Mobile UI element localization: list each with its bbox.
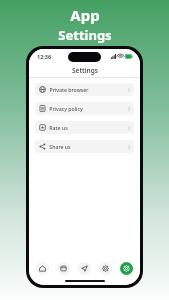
staticText: 12:36 <box>37 53 52 60</box>
button[interactable]: Privacy policy <box>35 102 134 115</box>
button[interactable]: Tools <box>99 262 112 275</box>
button[interactable]: Rate us <box>35 121 134 134</box>
staticText: Settings <box>72 66 98 75</box>
button[interactable]: Send <box>78 262 91 275</box>
staticText: Private browser <box>49 86 89 93</box>
button[interactable]: Downloads <box>57 262 70 275</box>
staticText: App <box>70 5 100 25</box>
staticText: Settings <box>58 26 112 44</box>
staticText: Rate us <box>49 124 68 131</box>
staticText: Share us <box>49 143 71 150</box>
button[interactable]: Home <box>36 262 49 275</box>
button[interactable]: Settings <box>120 262 133 275</box>
staticText: Privacy policy <box>49 105 83 112</box>
button[interactable]: Private browser <box>35 83 134 96</box>
button[interactable]: Share us <box>35 140 134 153</box>
